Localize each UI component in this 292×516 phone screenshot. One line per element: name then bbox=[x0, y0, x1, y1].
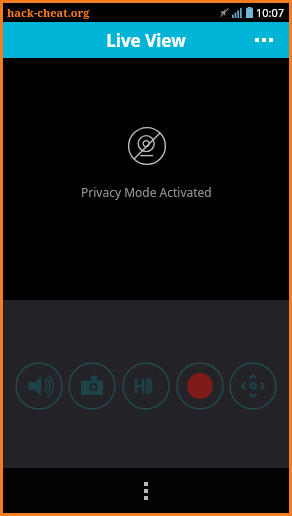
button[interactable]: Pan and tilt bbox=[229, 362, 277, 410]
button[interactable]: HD quality bbox=[122, 362, 170, 410]
button[interactable]: Menu bbox=[126, 471, 166, 511]
staticText: 10:07 bbox=[256, 5, 285, 20]
staticText: Live View bbox=[106, 29, 186, 52]
staticText: Privacy Mode Activated bbox=[81, 184, 212, 200]
staticText: hack-cheat.org bbox=[7, 5, 90, 20]
button[interactable]: Snapshot bbox=[68, 362, 116, 410]
button[interactable]: More options bbox=[247, 23, 281, 57]
button[interactable]: Record bbox=[176, 362, 224, 410]
button[interactable]: Speaker bbox=[15, 362, 63, 410]
